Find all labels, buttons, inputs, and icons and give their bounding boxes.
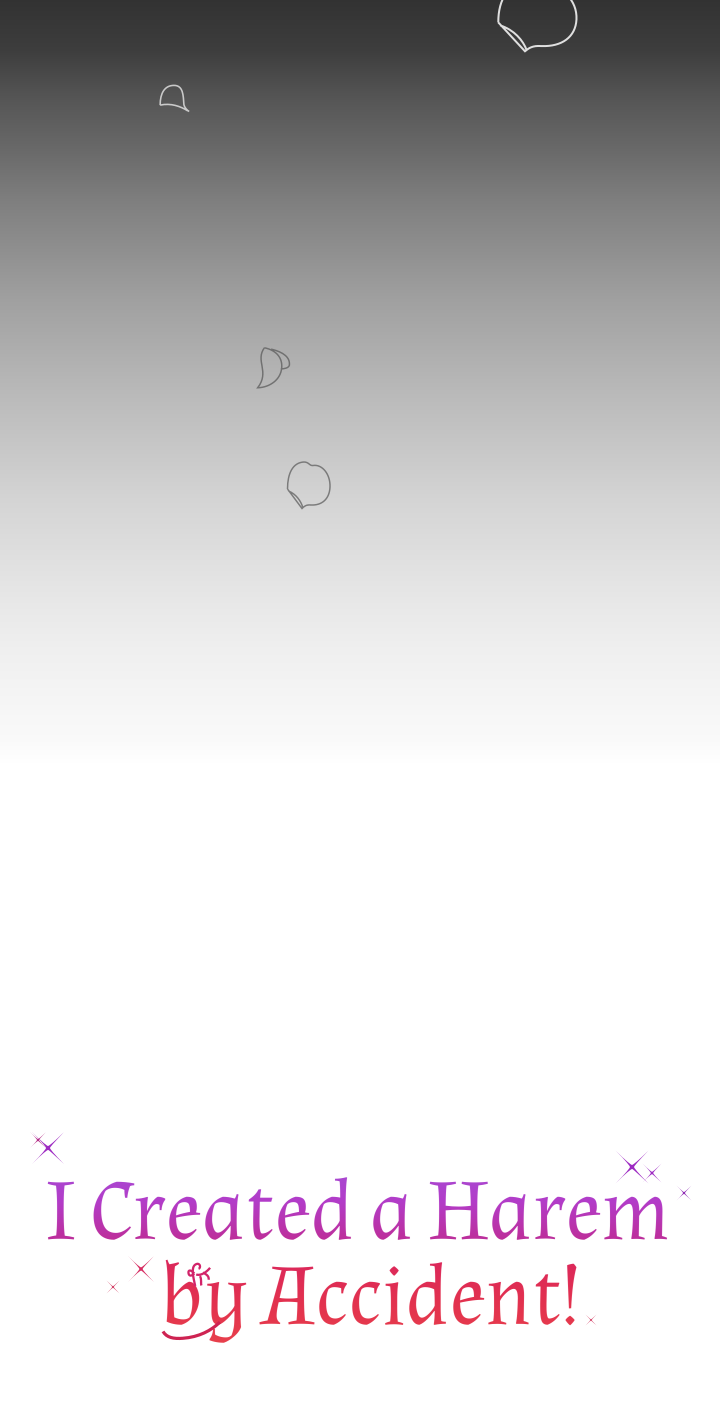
button[interactable] [0,1100,720,1400]
